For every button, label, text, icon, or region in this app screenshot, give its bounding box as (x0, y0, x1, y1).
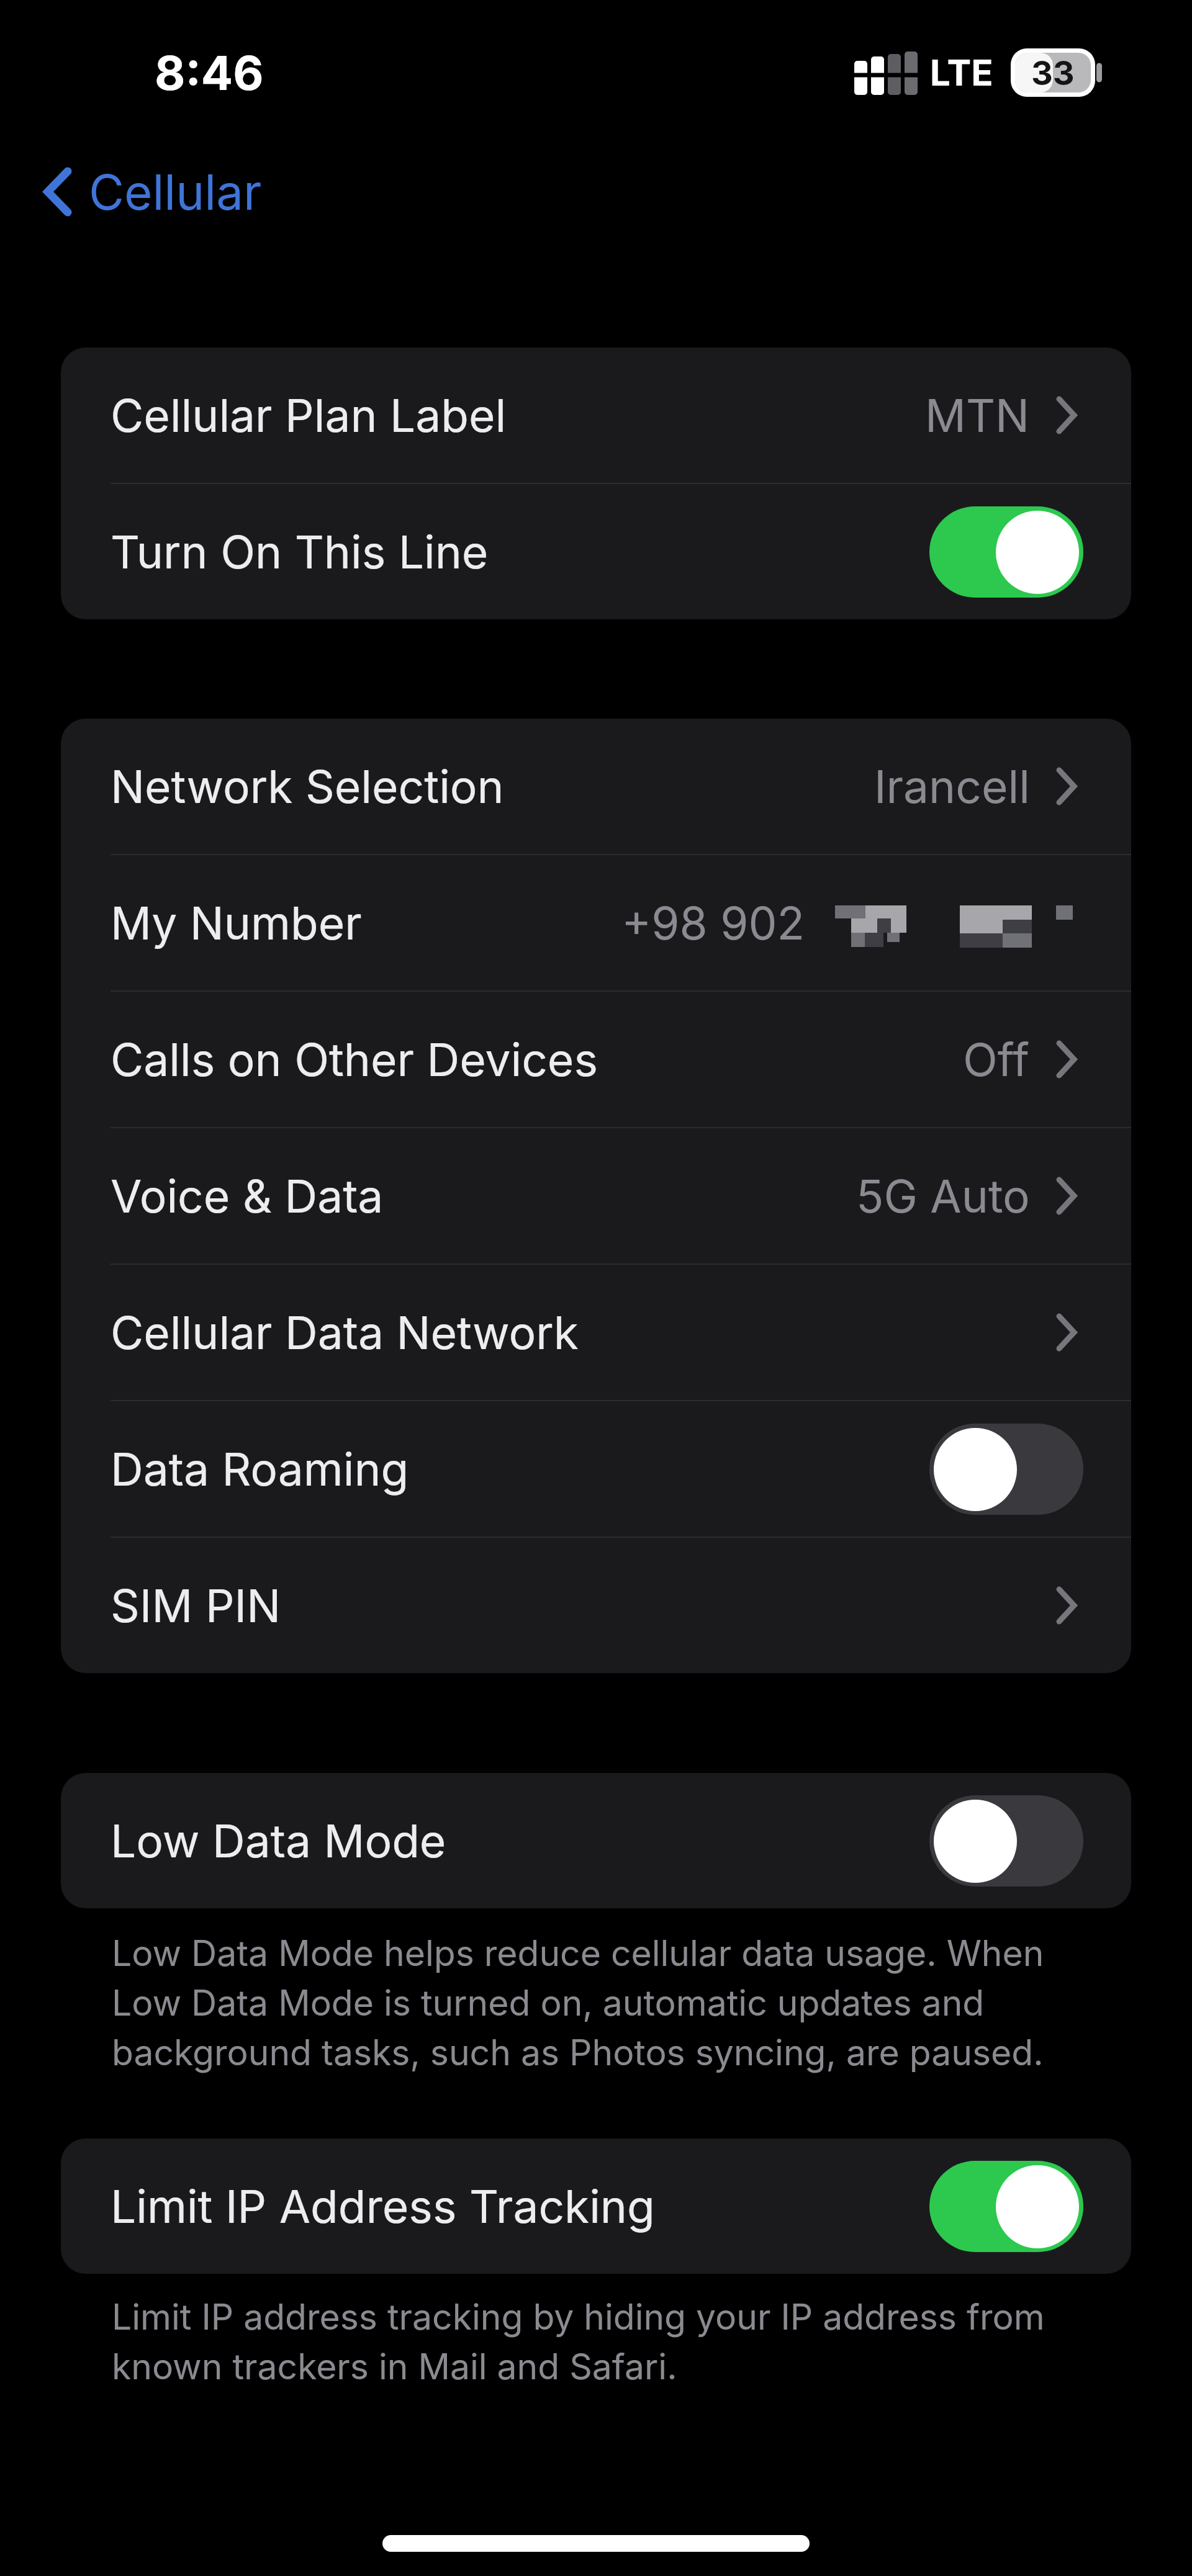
button[interactable]: Off (929, 1795, 1083, 1887)
staticText: My Number (111, 895, 362, 950)
button[interactable]: Cellular Plan Label (61, 348, 1131, 483)
button[interactable]: SIM PIN (61, 1538, 1131, 1673)
other: Open (1055, 1039, 1078, 1080)
staticText: 33 (1031, 53, 1075, 93)
staticText: Data Roaming (111, 1442, 409, 1496)
button[interactable]: Back (43, 145, 1192, 238)
staticText: Cellular Plan Label (111, 388, 507, 442)
button[interactable]: Off (929, 1424, 1083, 1515)
staticText: +98 902 (621, 895, 805, 950)
staticText: Irancell (874, 759, 1030, 814)
button[interactable]: Voice & Data (61, 1128, 1131, 1263)
staticText: SIM PIN (111, 1578, 281, 1633)
button[interactable]: Calls on Other Devices (61, 992, 1131, 1127)
staticText: Low Data Mode helps reduce cellular data… (112, 1932, 1059, 2074)
other: Open (1055, 766, 1078, 807)
staticText: Cellular Data Network (111, 1305, 579, 1360)
button[interactable]: Data Roaming (61, 1401, 1131, 1537)
button[interactable]: My Number (61, 855, 1131, 990)
button[interactable]: Turn On This Line (61, 484, 1131, 619)
button[interactable]: Cellular Data Network (61, 1265, 1131, 1400)
button[interactable]: Low Data Mode (61, 1773, 1131, 1908)
staticText: Cellular (89, 163, 262, 221)
button[interactable]: Limit IP Address Tracking (61, 2138, 1131, 2274)
other: Open (1055, 1312, 1078, 1353)
staticText: Limit IP Address Tracking (111, 2179, 655, 2233)
staticText: Voice & Data (111, 1169, 384, 1223)
staticText: 8:46 (155, 44, 264, 101)
staticText: MTN (925, 388, 1030, 442)
other: Open (1055, 1175, 1078, 1216)
button[interactable]: On (929, 506, 1083, 598)
staticText: 5G Auto (856, 1169, 1030, 1223)
button[interactable]: On (929, 2161, 1083, 2252)
staticText: Off (963, 1032, 1030, 1087)
other: Back (43, 166, 71, 217)
other: Open (1055, 1585, 1078, 1626)
staticText: LTE (930, 51, 993, 94)
staticText: Network Selection (111, 759, 504, 814)
other: Open (1055, 395, 1078, 436)
button[interactable]: Network Selection (61, 719, 1131, 854)
staticText: Turn On This Line (111, 524, 489, 579)
staticText: Calls on Other Devices (111, 1032, 598, 1087)
staticText: Low Data Mode (111, 1813, 446, 1868)
staticText: Limit IP address tracking by hiding your… (112, 2296, 1059, 2388)
